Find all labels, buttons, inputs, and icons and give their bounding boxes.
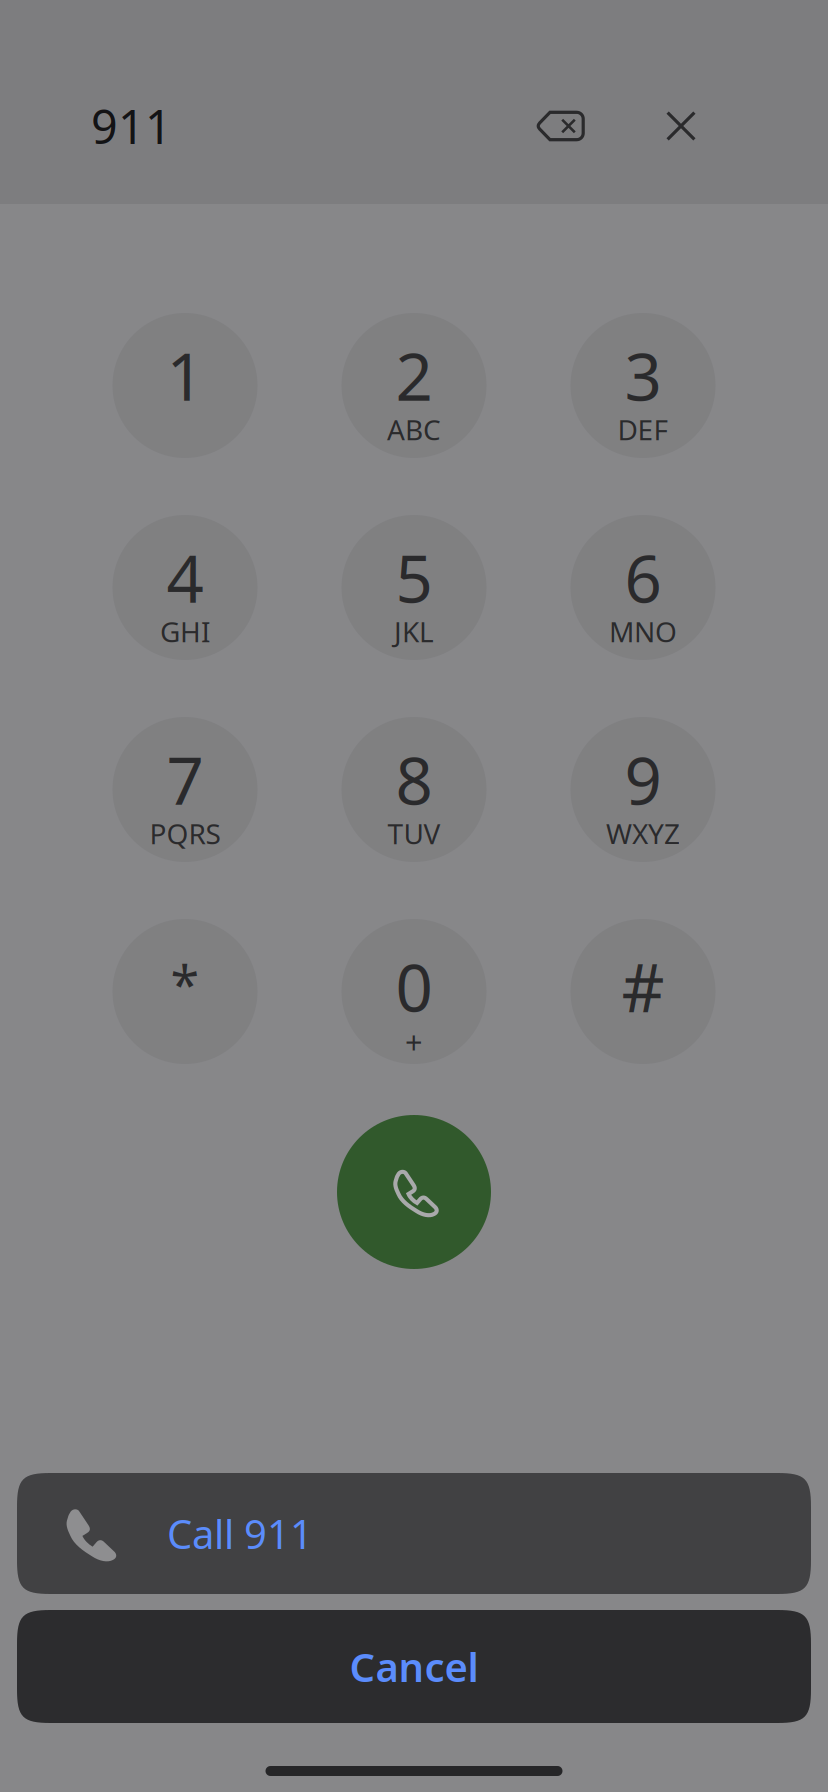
staticText: 7 — [166, 736, 203, 823]
button[interactable]: 1 — [112, 313, 257, 458]
staticText: 3 — [624, 332, 661, 419]
staticText: JKL — [394, 613, 434, 650]
staticText: 8 — [395, 736, 432, 823]
staticText: 1 — [166, 332, 203, 419]
button[interactable]: Call 911 — [17, 1473, 811, 1594]
button[interactable]: 4 — [112, 515, 257, 660]
staticText: * — [170, 949, 199, 1018]
button[interactable]: Delete — [536, 110, 585, 141]
staticText: 9 — [624, 736, 661, 823]
button[interactable]: Close — [666, 111, 696, 141]
staticText: 5 — [395, 534, 432, 621]
staticText: WXYZ — [606, 815, 680, 852]
staticText: TUV — [387, 815, 440, 852]
staticText: 0 — [395, 943, 432, 1030]
button[interactable]: 2 — [341, 313, 486, 458]
staticText: DEF — [617, 411, 668, 448]
button[interactable]: Cancel — [17, 1610, 811, 1723]
staticText: ABC — [387, 411, 441, 448]
button[interactable]: 8 — [341, 717, 486, 862]
button[interactable]: 3 — [570, 313, 715, 458]
button[interactable]: 7 — [112, 717, 257, 862]
staticText: PQRS — [149, 815, 220, 852]
button[interactable]: # — [570, 919, 715, 1064]
staticText: + — [405, 1021, 423, 1062]
staticText: Call 911 — [167, 1507, 313, 1560]
staticText: # — [621, 942, 664, 1031]
button[interactable]: 6 — [570, 515, 715, 660]
button[interactable]: Call — [337, 1115, 491, 1269]
button[interactable]: * — [112, 919, 257, 1064]
button[interactable]: 5 — [341, 515, 486, 660]
staticText: GHI — [160, 613, 210, 650]
staticText: 2 — [395, 332, 432, 419]
button[interactable]: 0 — [341, 919, 486, 1064]
staticText: 6 — [624, 534, 661, 621]
staticText: MNO — [609, 613, 677, 650]
staticText: Cancel — [349, 1640, 478, 1693]
staticText: 4 — [166, 534, 203, 621]
button[interactable]: 9 — [570, 717, 715, 862]
staticText: 911 — [91, 95, 172, 157]
